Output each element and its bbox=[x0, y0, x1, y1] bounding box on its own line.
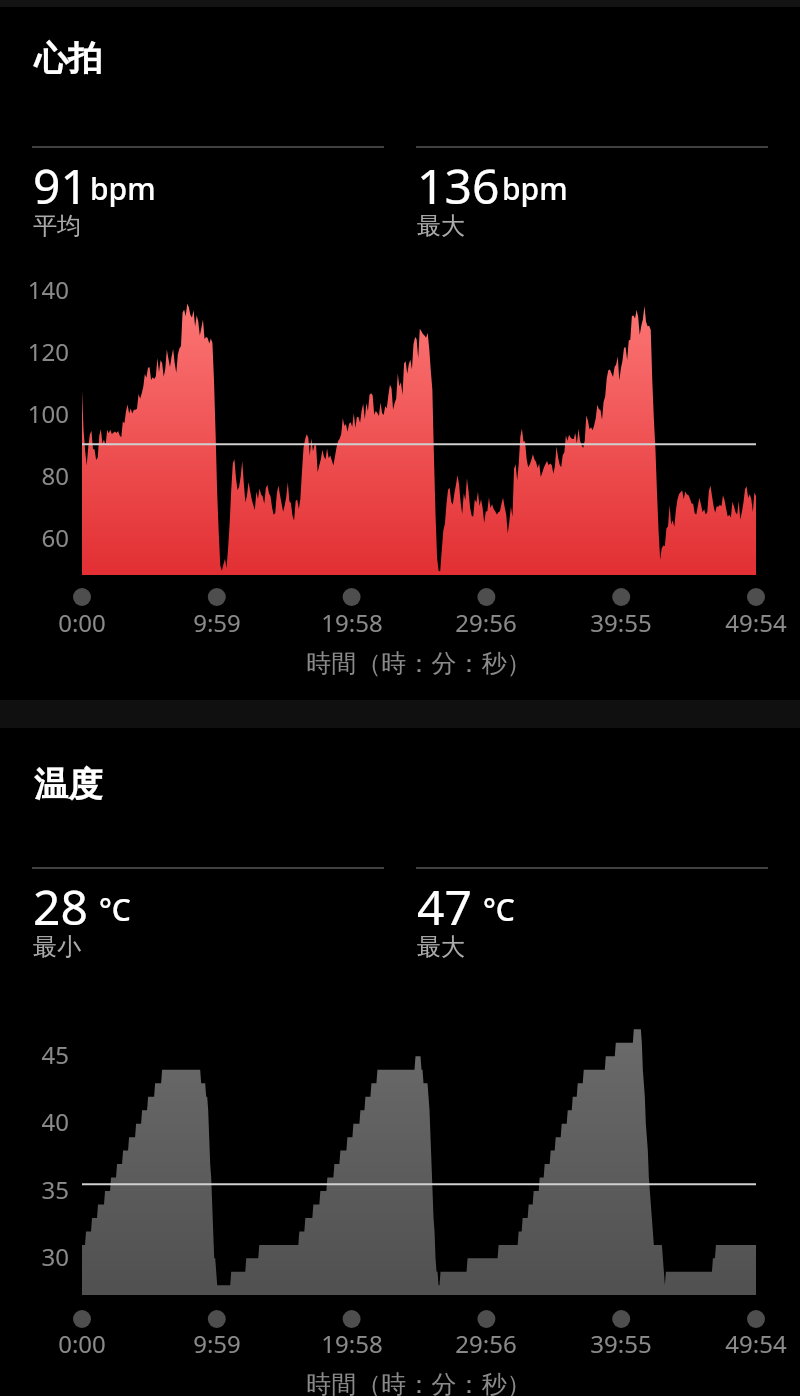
staticText: 30 bbox=[2, 1240, 69, 1273]
staticText: °C bbox=[99, 889, 131, 930]
staticText: 47 bbox=[417, 874, 472, 939]
staticText: 45 bbox=[2, 1038, 69, 1071]
staticText: 最大 bbox=[417, 932, 465, 962]
staticText: 0:00 bbox=[12, 606, 152, 639]
staticText: 19:58 bbox=[282, 1327, 422, 1360]
staticText: 40 bbox=[2, 1105, 69, 1138]
button[interactable]: 136 bbox=[416, 146, 768, 246]
staticText: 80 bbox=[2, 459, 69, 492]
button[interactable]: 91 bbox=[32, 146, 384, 246]
staticText: bpm bbox=[502, 168, 568, 209]
staticText: 29:56 bbox=[416, 606, 556, 639]
staticText: 最大 bbox=[417, 211, 465, 241]
button[interactable]: 温度 bbox=[34, 757, 102, 807]
staticText: 9:59 bbox=[147, 606, 287, 639]
staticText: 19:58 bbox=[282, 606, 422, 639]
staticText: 140 bbox=[2, 273, 69, 306]
staticText: 39:55 bbox=[551, 606, 691, 639]
staticText: 60 bbox=[2, 521, 69, 554]
staticText: 最小 bbox=[33, 932, 81, 962]
staticText: 9:59 bbox=[147, 1327, 287, 1360]
staticText: bpm bbox=[90, 168, 156, 209]
staticText: 91 bbox=[33, 153, 88, 218]
button[interactable]: 心拍 bbox=[34, 31, 102, 81]
staticText: 39:55 bbox=[551, 1327, 691, 1360]
button[interactable]: Heart rate chart bbox=[0, 272, 800, 575]
staticText: 心拍 bbox=[34, 37, 102, 80]
button[interactable]: 28 bbox=[32, 867, 384, 967]
staticText: 平均 bbox=[33, 211, 81, 241]
staticText: 49:54 bbox=[686, 1327, 800, 1360]
staticText: 0:00 bbox=[12, 1327, 152, 1360]
staticText: 120 bbox=[2, 335, 69, 368]
staticText: 28 bbox=[33, 874, 88, 939]
staticText: 29:56 bbox=[416, 1327, 556, 1360]
staticText: 35 bbox=[2, 1173, 69, 1206]
staticText: 温度 bbox=[34, 763, 102, 806]
staticText: °C bbox=[483, 889, 515, 930]
staticText: 136 bbox=[417, 153, 500, 218]
staticText: 時間（時：分：秒） bbox=[42, 1369, 796, 1396]
button[interactable]: 47 bbox=[416, 867, 768, 967]
staticText: 100 bbox=[2, 397, 69, 430]
staticText: 時間（時：分：秒） bbox=[42, 648, 796, 679]
button[interactable]: Temperature chart bbox=[0, 1038, 800, 1295]
staticText: 49:54 bbox=[686, 606, 800, 639]
